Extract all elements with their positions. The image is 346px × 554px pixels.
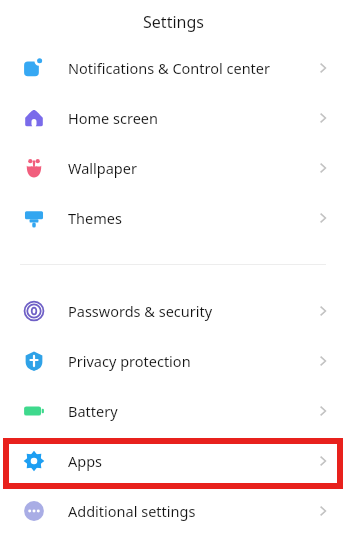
button[interactable]: Battery xyxy=(0,386,346,436)
other: Apps row highlighted xyxy=(3,438,343,489)
staticText: Wallpaper xyxy=(68,158,137,178)
button[interactable]: Privacy protection xyxy=(0,336,346,386)
staticText: Themes xyxy=(68,208,122,228)
button[interactable]: Themes xyxy=(0,193,346,243)
staticText: Passwords & security xyxy=(68,301,213,321)
staticText: Settings xyxy=(143,11,204,33)
button[interactable]: Passwords & security xyxy=(0,286,346,336)
staticText: Privacy protection xyxy=(68,351,191,371)
staticText: Battery xyxy=(68,401,118,421)
staticText: Apps xyxy=(68,451,103,471)
button[interactable]: Additional settings xyxy=(0,486,346,536)
staticText: Home screen xyxy=(68,108,158,128)
button[interactable]: Apps xyxy=(0,436,346,486)
button[interactable]: Notifications & Control center xyxy=(0,43,346,93)
button[interactable]: Wallpaper xyxy=(0,143,346,193)
staticText: Additional settings xyxy=(68,501,196,521)
staticText: Notifications & Control center xyxy=(68,58,271,78)
button[interactable]: Home screen xyxy=(0,93,346,143)
